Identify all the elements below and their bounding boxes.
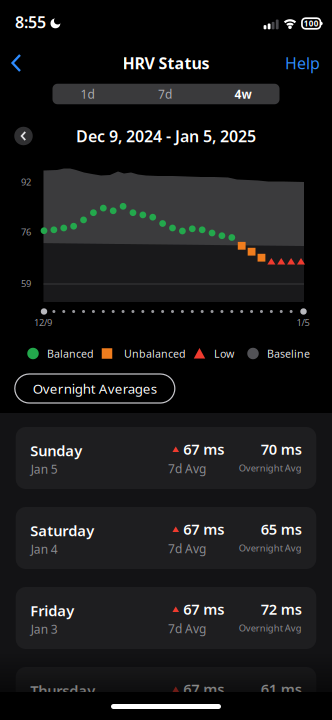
staticText: 7d Avg [168,700,206,716]
staticText: Jan 5 [31,461,58,477]
staticText: Low [214,346,234,361]
staticText: 59 [21,277,31,290]
staticText: 8:55 [15,11,46,33]
staticText: 67 ms [183,679,224,699]
staticText: 7d Avg [168,620,206,636]
staticText: 1/5 [296,316,309,329]
staticText: 12/9 [34,316,52,329]
staticText: Overnight Averages [33,380,157,397]
staticText: Dec 9, 2024 - Jan 5, 2025 [76,125,256,147]
button[interactable]: 7d [127,84,202,104]
button[interactable]: Previous period [14,127,33,145]
staticText: Thursday [30,681,95,700]
staticText: 100 [304,18,319,29]
staticText: 65 ms [261,519,302,539]
staticText: Jan 4 [31,541,58,557]
staticText: Saturday [30,521,94,540]
staticText: 67 ms [183,599,224,619]
staticText: 4w [234,86,251,102]
button[interactable]: Friday [16,587,316,649]
button[interactable]: Saturday [16,507,316,569]
staticText: HRV Status [122,52,209,74]
staticText: 70 ms [261,439,302,459]
staticText: Baseline [267,346,310,361]
staticText: 61 ms [261,679,302,699]
staticText: Overnight Avg [239,542,302,554]
staticText: 7d Avg [168,540,206,556]
button[interactable]: 4w [205,84,280,104]
button[interactable]: 1d [50,84,125,104]
staticText: 76 [21,226,31,238]
staticText: Balanced [47,346,94,361]
staticText: Jan 3 [31,621,58,637]
staticText: Sunday [30,441,82,460]
staticText: Friday [30,601,74,620]
button[interactable]: Thursday [16,667,316,720]
button[interactable]: Overnight Averages [15,374,175,403]
button[interactable]: Back [0,0,30,36]
staticText: 7d [158,86,172,102]
button[interactable]: Sunday [16,427,316,489]
staticText: 72 ms [261,599,302,619]
staticText: Overnight Avg [239,462,302,474]
button[interactable]: Help [277,48,327,78]
staticText: 92 [21,176,31,188]
staticText: Help [285,52,320,74]
staticText: 1d [80,86,94,102]
staticText: 7d Avg [168,460,206,476]
staticText: Overnight Avg [239,622,302,634]
staticText: 67 ms [183,439,224,459]
staticText: Unbalanced [124,346,186,361]
staticText: 67 ms [183,519,224,539]
